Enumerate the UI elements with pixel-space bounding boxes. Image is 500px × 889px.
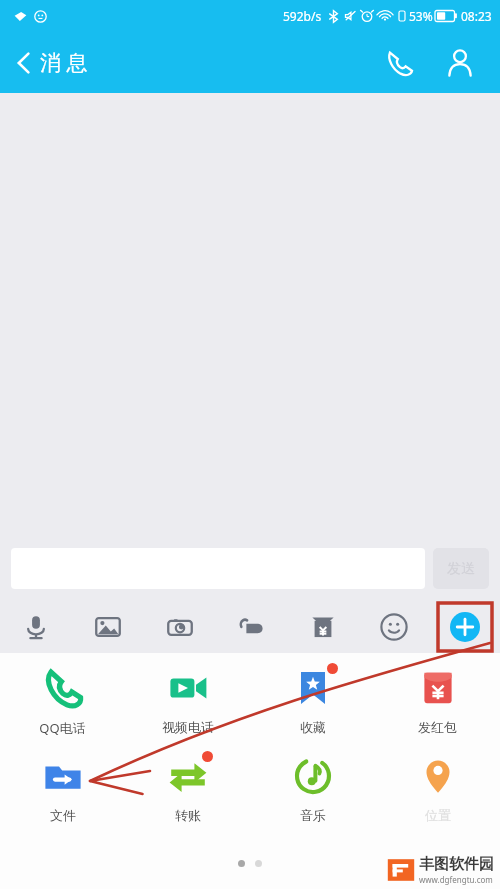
staticText: 收藏 [300,719,326,735]
staticText: 视频电话 [162,719,214,735]
button[interactable]: 消 息 [8,42,94,83]
staticText: 消 息 [40,48,88,77]
button[interactable]: Photos [72,600,144,653]
button[interactable]: 位置 [375,753,500,823]
button[interactable]: More [438,603,492,651]
staticText: 位置 [425,807,451,823]
staticText: 发红包 [418,719,457,735]
button[interactable]: 发红包 [375,665,500,735]
button[interactable]: Camera [144,600,216,653]
button[interactable]: 转账 [125,753,250,823]
staticText: www.dgfengtu.com [419,874,493,885]
button[interactable]: 视频电话 [125,665,250,735]
staticText: 转账 [175,807,201,823]
staticText: QQ电话 [39,719,86,737]
button[interactable]: 文件 [0,753,125,823]
button[interactable]: Emoji [358,600,429,653]
staticText: 丰图软件园 [419,855,494,874]
button[interactable]: Voice message [0,600,72,653]
staticText: 发送 [447,560,475,578]
staticText: 592b/s [283,8,322,24]
button[interactable]: QQ电话 [0,665,125,737]
button[interactable]: 音乐 [250,753,375,823]
staticText: 08:23 [461,8,492,24]
button[interactable]: Call [378,41,422,85]
button[interactable]: Profile [438,41,482,85]
staticText: 53% [409,8,433,24]
button[interactable]: Red packet [287,600,358,653]
button[interactable]: Poke [216,600,287,653]
button[interactable]: 发送 [433,548,489,589]
button[interactable]: 收藏 [250,665,375,735]
staticText: 文件 [50,807,76,823]
staticText: 音乐 [300,807,326,823]
